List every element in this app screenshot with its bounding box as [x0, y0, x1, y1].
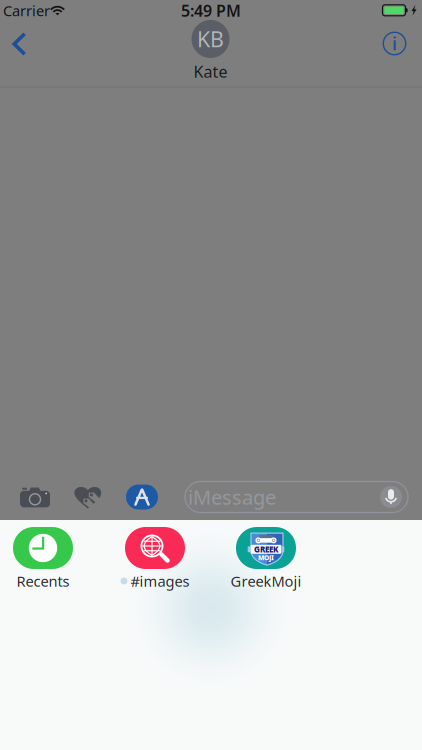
staticText: GreekMoji	[230, 571, 301, 591]
staticText: Carrier	[3, 1, 50, 20]
button[interactable]: Camera	[13, 476, 57, 518]
button[interactable]: Apps	[120, 476, 164, 518]
button[interactable]: Details	[372, 21, 416, 65]
staticText: KB	[197, 25, 224, 53]
button[interactable]: iMessage text field	[185, 481, 408, 512]
button[interactable]: #images	[109, 520, 201, 596]
staticText: i	[392, 31, 397, 55]
staticText: MOJI	[258, 553, 274, 562]
button[interactable]: Back	[0, 22, 41, 66]
staticText: Recents	[16, 571, 69, 591]
staticText: GREEK	[254, 544, 278, 555]
button[interactable]: GREEK	[220, 520, 312, 596]
staticText: #images	[130, 571, 189, 591]
staticText: 5:49 PM	[181, 0, 241, 21]
staticText: Kate	[193, 61, 227, 82]
button[interactable]: Digital Touch	[66, 476, 110, 518]
button[interactable]: Kate	[172, 20, 248, 82]
button[interactable]: Recents	[0, 520, 89, 596]
staticText: iMessage	[188, 484, 276, 510]
